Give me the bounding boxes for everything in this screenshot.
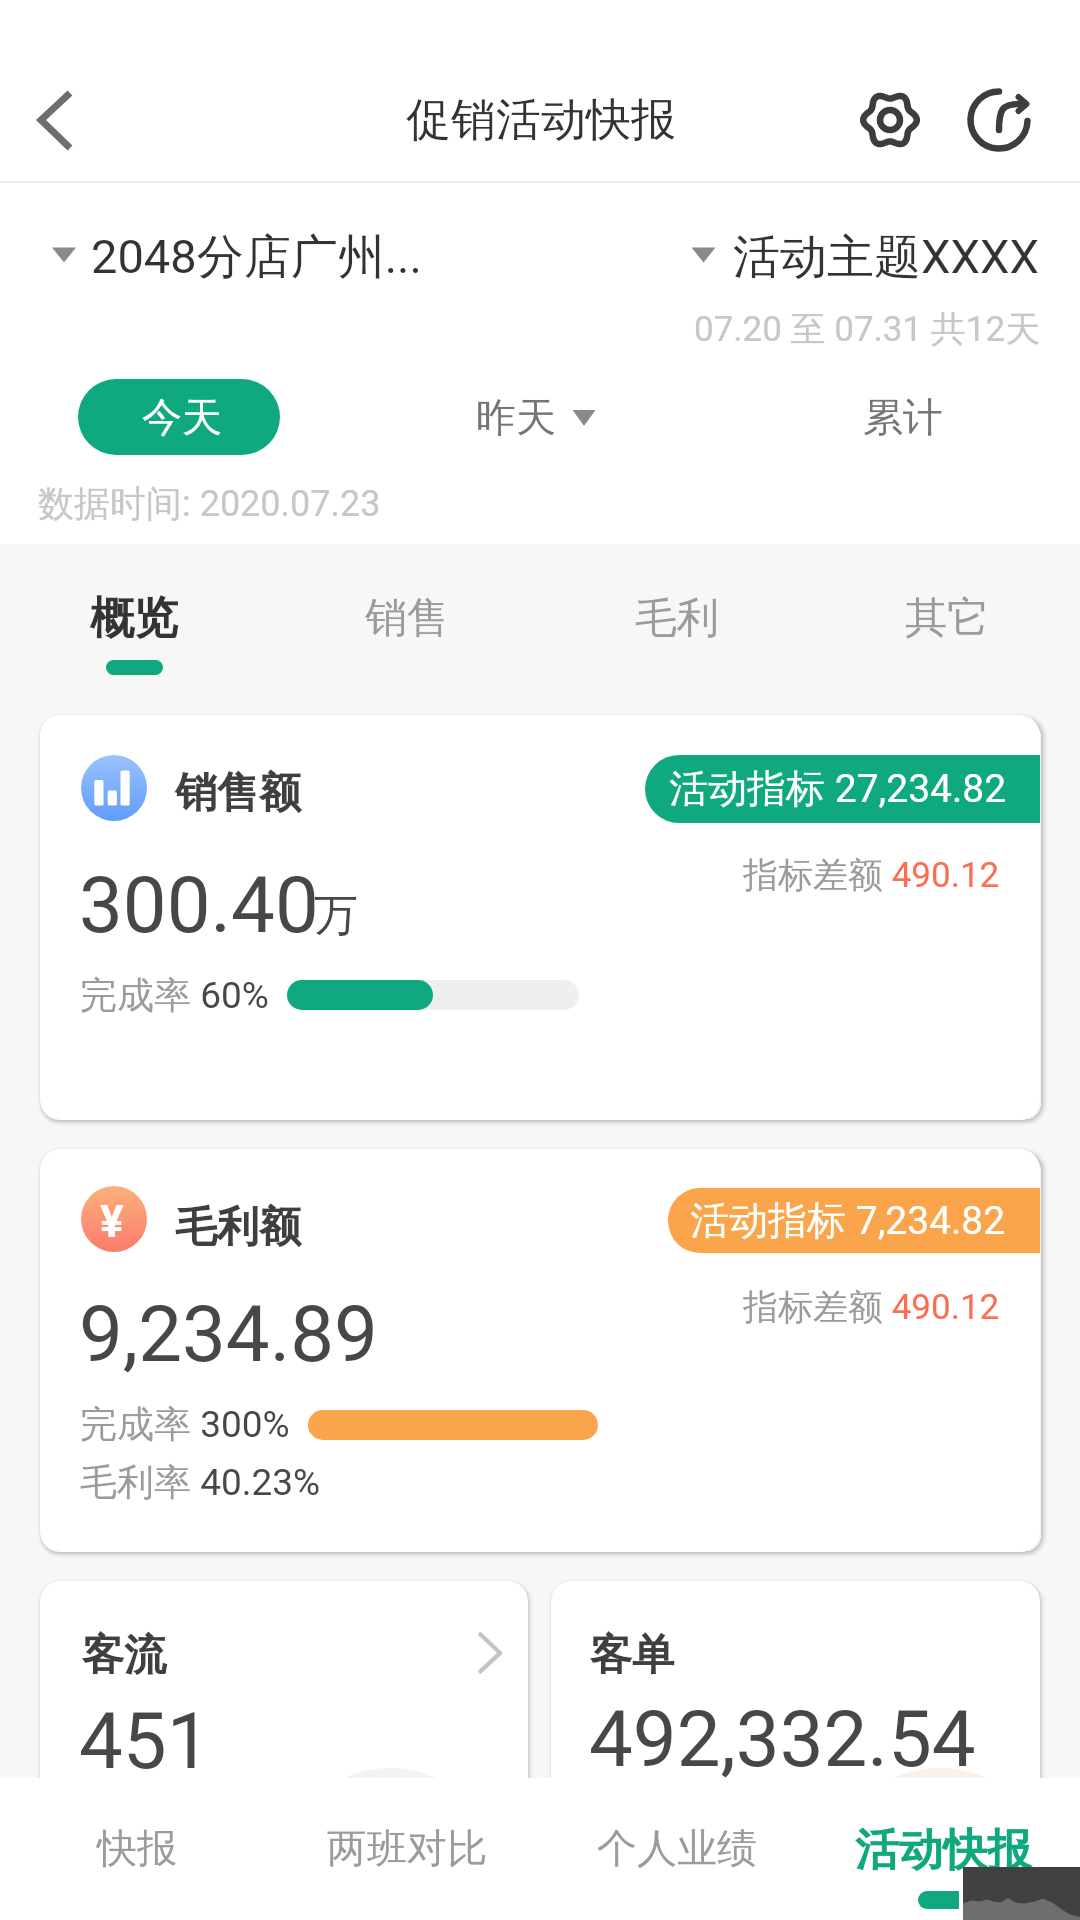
button[interactable]: 销售 (270, 552, 540, 684)
button[interactable]: Back (4, 64, 116, 176)
staticText: 万 (314, 888, 358, 943)
staticText: 活动指标 27,234.82 (669, 764, 1007, 813)
button[interactable]: 客流 (40, 1581, 528, 1821)
staticText: 2048分店广州... (91, 228, 422, 287)
staticText: 300.40 (79, 860, 319, 951)
button[interactable]: Settings (846, 76, 934, 164)
staticText: 9,234.89 (79, 1289, 378, 1380)
staticText: 销售额 (175, 767, 301, 820)
button[interactable]: 今天 (78, 379, 280, 455)
staticText: 活动主题XXXX (733, 228, 1039, 287)
staticText: 快报 (97, 1823, 177, 1873)
button[interactable]: 2048分店广州... (30, 215, 450, 295)
button[interactable]: 快报 (0, 1778, 270, 1920)
staticText: 概览 (90, 591, 178, 646)
button[interactable]: 毛利 (540, 552, 810, 684)
button[interactable]: Share (955, 76, 1043, 164)
staticText: 451 (79, 1696, 211, 1787)
staticText: 活动快报 (855, 1823, 1031, 1878)
staticText: 毛利 (635, 592, 719, 645)
button[interactable]: ¥ (40, 1149, 1040, 1552)
staticText: 492,332.54 (589, 1694, 976, 1785)
staticText: 客流 (82, 1629, 166, 1682)
staticText: 活动指标 7,234.82 (690, 1196, 1006, 1245)
button[interactable]: 累计 (800, 379, 1000, 455)
staticText: 指标差额 490.12 (743, 853, 1000, 897)
button[interactable]: 活动快报 (810, 1778, 1080, 1920)
staticText: ¥ (100, 1196, 124, 1248)
staticText: 累计 (863, 392, 943, 442)
staticText: 指标差额 490.12 (743, 1285, 1000, 1329)
staticText: 两班对比 (327, 1823, 487, 1873)
staticText: 完成率 300% (80, 1401, 290, 1448)
button[interactable]: 活动主题XXXX (670, 215, 1050, 295)
staticText: 完成率 60% (80, 972, 269, 1019)
button[interactable]: 概览 (0, 552, 270, 684)
button[interactable]: 昨天 (440, 379, 640, 455)
staticText: 07.20 至 07.31 共12天 (694, 307, 1041, 351)
staticText: 数据时间: 2020.07.23 (38, 481, 381, 526)
staticText: 个人业绩 (597, 1823, 757, 1873)
staticText: 毛利额 (175, 1201, 301, 1254)
staticText: 昨天 (476, 392, 556, 442)
staticText: 客单 (590, 1629, 674, 1682)
staticText: 促销活动快报 (406, 92, 676, 149)
button[interactable]: 两班对比 (270, 1778, 540, 1920)
button[interactable]: 其它 (810, 552, 1080, 684)
staticText: 销售 (365, 592, 449, 645)
staticText: 其它 (905, 592, 989, 645)
button[interactable]: 客单 (551, 1581, 1040, 1821)
button[interactable]: 个人业绩 (540, 1778, 810, 1920)
staticText: 毛利率 40.23% (80, 1459, 321, 1506)
staticText: 今天 (142, 392, 222, 442)
button[interactable]: 销售额 (40, 715, 1040, 1120)
